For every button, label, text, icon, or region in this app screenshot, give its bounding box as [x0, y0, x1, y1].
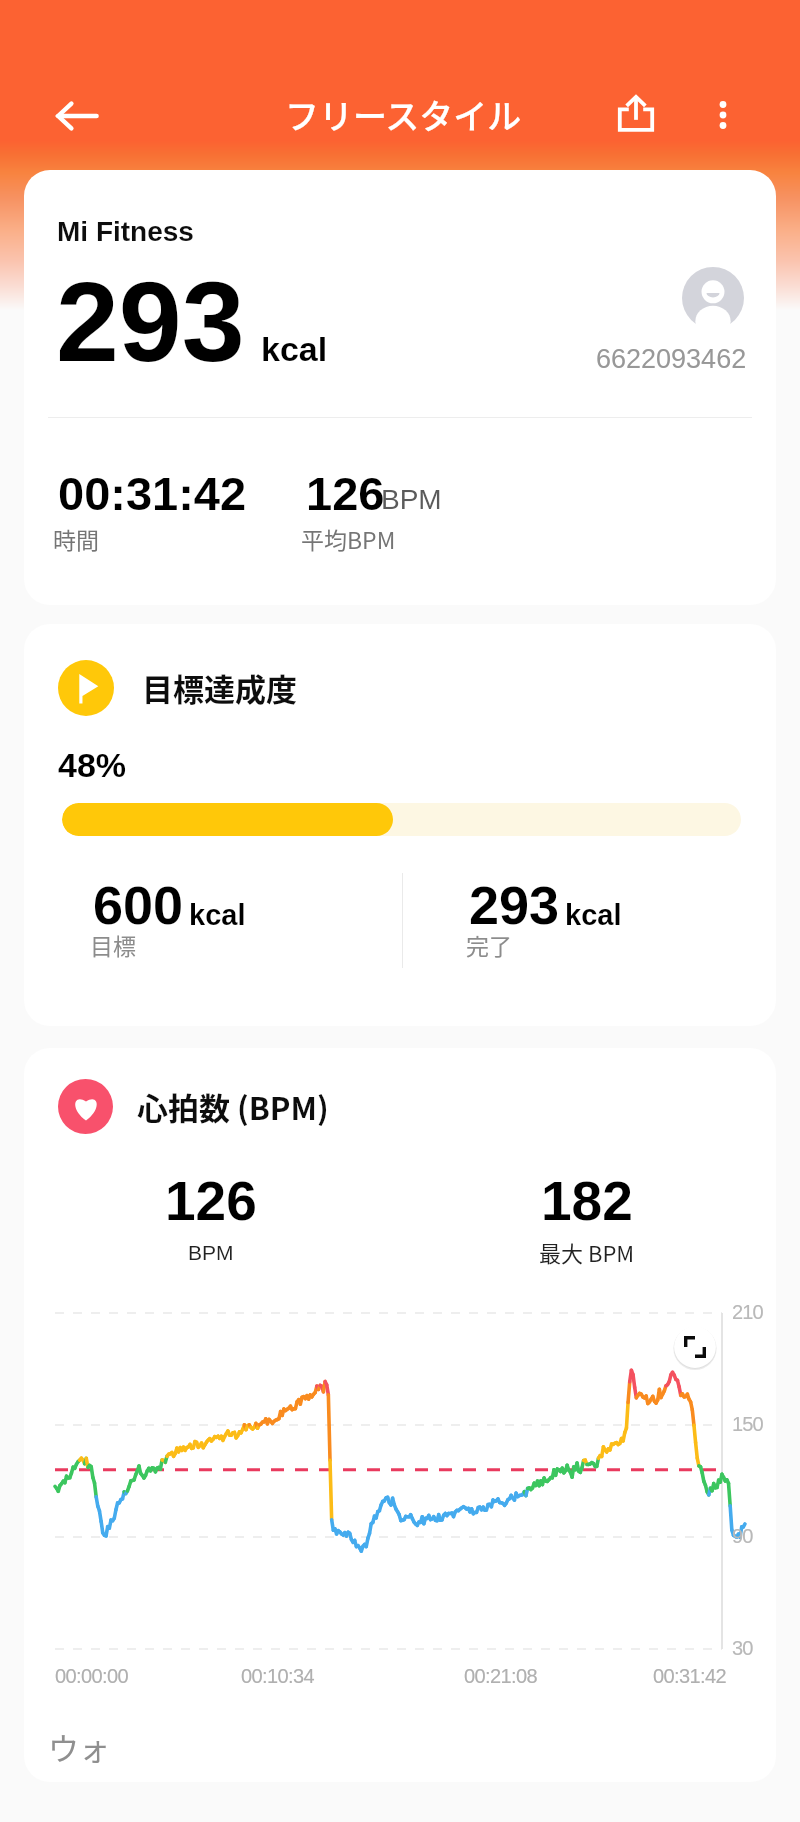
staticText: 293: [56, 259, 245, 385]
staticText: 00:00:00: [55, 1665, 129, 1687]
staticText: 最大 BPM: [539, 1236, 635, 1268]
staticText: 182: [541, 1170, 633, 1231]
staticText: kcal: [189, 899, 246, 931]
staticText: 平均BPM: [301, 522, 396, 555]
staticText: ウォ: [48, 1724, 110, 1769]
staticText: 293: [469, 875, 560, 935]
staticText: フリースタイル: [285, 90, 522, 138]
staticText: 6622093462: [596, 344, 747, 374]
button[interactable]: Share: [606, 83, 666, 143]
staticText: 心拍数 (BPM): [137, 1084, 329, 1129]
staticText: 00:21:08: [464, 1665, 538, 1687]
staticText: 210: [732, 1301, 763, 1323]
staticText: Mi Fitness: [57, 216, 194, 247]
staticText: 48%: [58, 746, 127, 784]
staticText: 30: [732, 1637, 753, 1659]
staticText: 00:10:34: [241, 1665, 315, 1687]
staticText: kcal: [261, 330, 328, 368]
staticText: 目標: [90, 928, 136, 961]
staticText: 90: [732, 1525, 753, 1547]
staticText: 126: [165, 1170, 257, 1231]
staticText: BPM: [381, 484, 442, 515]
staticText: 00:31:42: [653, 1665, 727, 1687]
staticText: BPM: [188, 1241, 234, 1264]
button[interactable]: Back: [46, 85, 108, 147]
staticText: 完了: [466, 928, 512, 961]
staticText: 150: [732, 1413, 763, 1435]
staticText: 時間: [53, 522, 99, 555]
staticText: 126: [306, 467, 385, 520]
staticText: kcal: [565, 899, 622, 931]
staticText: 目標達成度: [142, 665, 297, 710]
staticText: 00:31:42: [58, 467, 247, 520]
staticText: 600: [93, 875, 184, 935]
button[interactable]: Expand chart: [672, 1324, 718, 1370]
button[interactable]: More options: [693, 85, 753, 145]
